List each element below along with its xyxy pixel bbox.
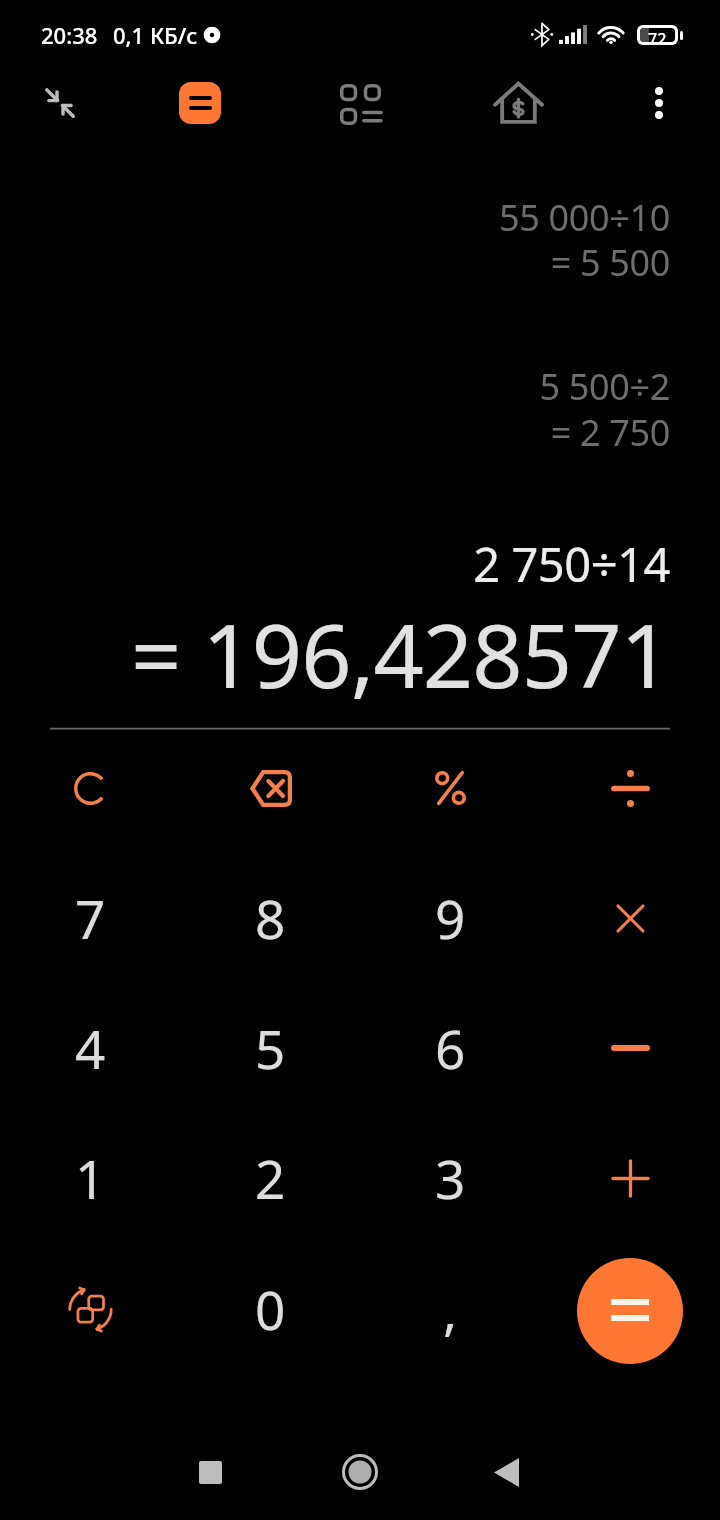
staticText: 72	[648, 28, 667, 42]
staticText: = 5 500	[550, 238, 670, 287]
button[interactable]: Divide	[540, 723, 720, 853]
button[interactable]: Recents	[166, 1428, 254, 1516]
staticText: = 2 750	[550, 408, 670, 457]
button[interactable]: 2	[180, 1113, 360, 1243]
staticText: 5 500÷2	[539, 362, 670, 411]
button[interactable]: Convert units	[0, 1244, 180, 1374]
staticText: 55 000÷10	[499, 193, 670, 242]
staticText: 20:38	[41, 20, 98, 50]
button[interactable]: 9	[360, 853, 540, 983]
staticText: 5	[255, 1012, 286, 1084]
staticText: 6	[435, 1012, 466, 1084]
staticText: 7	[75, 882, 106, 954]
staticText: 4	[75, 1012, 106, 1084]
button[interactable]: Collapse	[16, 59, 104, 147]
staticText: ,	[443, 1273, 458, 1345]
button[interactable]: Calculator	[156, 59, 244, 147]
button[interactable]: Multiply	[540, 853, 720, 983]
button[interactable]: 0	[180, 1244, 360, 1374]
button[interactable]: More options	[615, 59, 703, 147]
button[interactable]: Subtract	[540, 983, 720, 1113]
button[interactable]: 8	[180, 853, 360, 983]
button[interactable]: Add	[540, 1113, 720, 1243]
button[interactable]: 7	[0, 853, 180, 983]
button[interactable]: 3	[360, 1113, 540, 1243]
button[interactable]: Clear	[0, 723, 180, 853]
button[interactable]: Back	[462, 1428, 550, 1516]
staticText: 8	[255, 882, 286, 954]
button[interactable]: 5	[180, 983, 360, 1113]
button[interactable]: Percent	[360, 723, 540, 853]
staticText: 0,1 КБ/с	[113, 20, 198, 50]
staticText: 0	[255, 1273, 286, 1345]
staticText: 9	[435, 882, 466, 954]
button[interactable]: ,	[360, 1244, 540, 1374]
staticText: 3	[435, 1142, 466, 1214]
staticText: 2 750÷14	[473, 532, 670, 596]
button[interactable]: Backspace	[180, 723, 360, 853]
staticText: 2	[255, 1142, 286, 1214]
staticText: 1	[75, 1142, 106, 1214]
staticText: = 196,428571	[130, 594, 670, 714]
button[interactable]: Home	[316, 1428, 404, 1516]
button[interactable]: 4	[0, 983, 180, 1113]
button[interactable]: Converters	[316, 59, 404, 147]
button[interactable]: Mortgage	[474, 59, 562, 147]
button[interactable]: 6	[360, 983, 540, 1113]
button[interactable]: Equals	[577, 1258, 683, 1364]
button[interactable]: 1	[0, 1113, 180, 1243]
